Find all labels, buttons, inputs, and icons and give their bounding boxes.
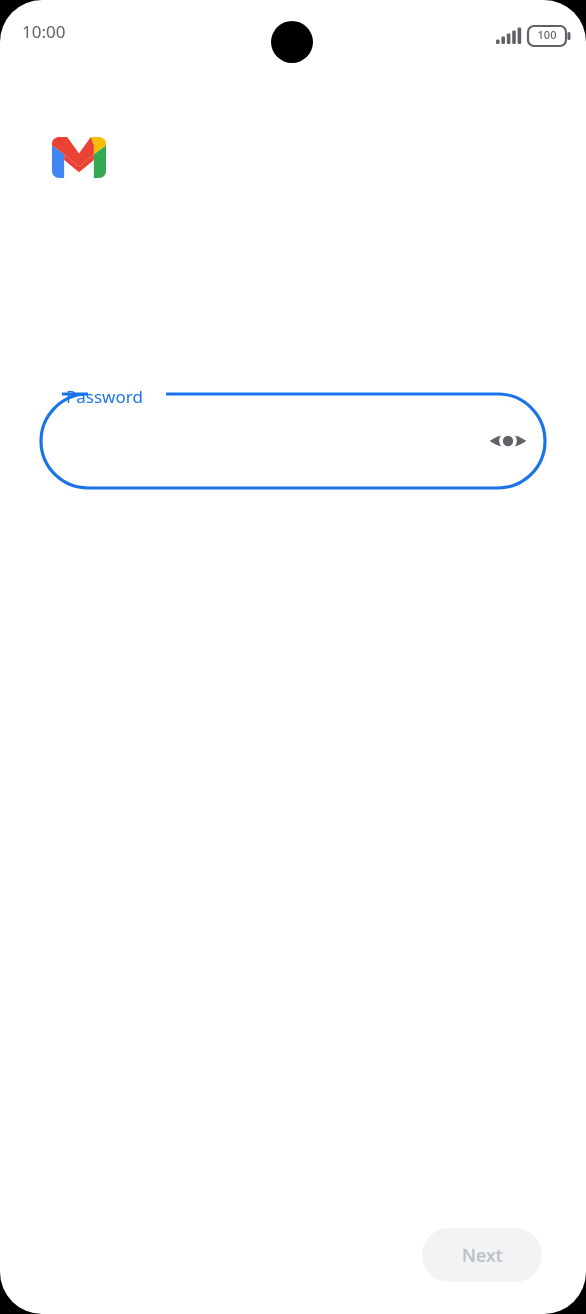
button[interactable]: [41, 394, 545, 488]
staticText: 100: [530, 27, 564, 45]
staticText: Next: [462, 1243, 503, 1268]
button[interactable]: Show password: [484, 417, 532, 465]
staticText: 10:00: [22, 20, 66, 43]
staticText: Password: [66, 385, 143, 408]
button[interactable]: Next: [422, 1228, 542, 1282]
other: Gmail: [52, 137, 106, 178]
